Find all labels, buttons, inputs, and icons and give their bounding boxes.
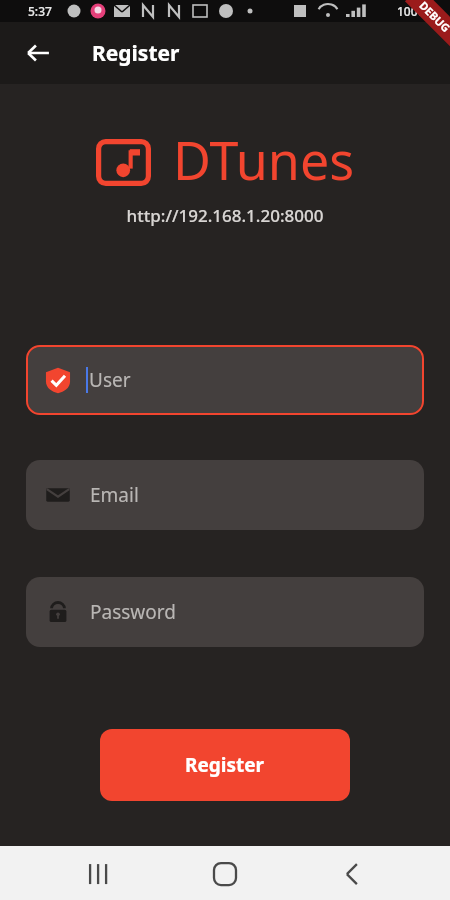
button[interactable]: Password	[26, 577, 424, 647]
staticText: Email	[90, 482, 139, 508]
staticText: http://192.168.1.20:8000	[0, 204, 450, 227]
button[interactable]: Back	[14, 29, 62, 77]
staticText: Password	[90, 599, 176, 625]
staticText: DEBUG	[416, 0, 450, 35]
staticText: 100%	[397, 3, 428, 19]
staticText: DTunes	[173, 124, 355, 195]
staticText: User	[89, 367, 131, 393]
staticText: Register	[185, 752, 265, 778]
button[interactable]: Email	[26, 460, 424, 530]
staticText: 5:37	[28, 3, 52, 19]
staticText: Register	[92, 39, 180, 68]
button[interactable]: User	[28, 347, 422, 413]
button[interactable]: Register	[100, 729, 350, 801]
